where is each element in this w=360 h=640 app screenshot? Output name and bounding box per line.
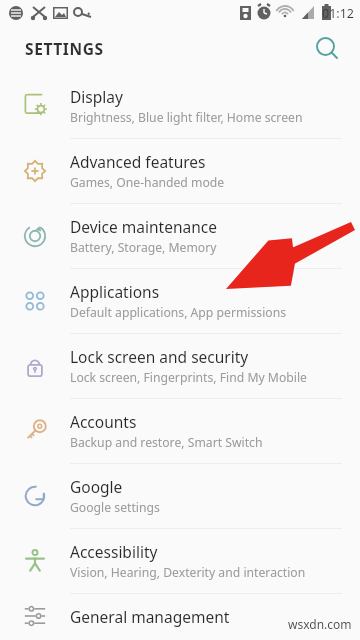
staticText: Advanced features (70, 151, 206, 172)
staticText: Games, One-handed mode (70, 174, 225, 191)
button[interactable]: Device maintenance (0, 204, 360, 268)
staticText: Google (70, 476, 123, 497)
button[interactable]: Display (0, 74, 360, 138)
staticText: Brightness, Blue light filter, Home scre… (70, 109, 303, 126)
button[interactable]: Google (0, 464, 360, 528)
staticText: Lock screen, Fingerprints, Find My Mobil… (70, 369, 307, 386)
staticText: 01:12 (322, 5, 354, 22)
staticText: Default applications, App permissions (70, 304, 287, 321)
button[interactable]: Accounts (0, 399, 360, 463)
staticText: Display (70, 86, 123, 107)
button[interactable]: Applications (0, 269, 360, 333)
staticText: Accounts (70, 411, 137, 432)
staticText: General management (70, 606, 230, 627)
staticText: Battery, Storage, Memory (70, 239, 217, 256)
staticText: Lock screen and security (70, 346, 249, 367)
button[interactable]: Accessibility (0, 529, 360, 593)
button[interactable]: Lock screen and security (0, 334, 360, 398)
staticText: Device maintenance (70, 216, 217, 237)
staticText: Vision, Hearing, Dexterity and interacti… (70, 564, 306, 581)
staticText: SETTINGS (25, 38, 104, 59)
button[interactable]: Advanced features (0, 139, 360, 203)
staticText: Google settings (70, 499, 160, 516)
staticText: wsxdn.com (288, 616, 352, 632)
staticText: Accessibility (70, 541, 158, 562)
staticText: Applications (70, 281, 160, 302)
button[interactable]: General management (0, 594, 360, 638)
staticText: Backup and restore, Smart Switch (70, 434, 263, 451)
button[interactable]: Search (310, 31, 344, 65)
